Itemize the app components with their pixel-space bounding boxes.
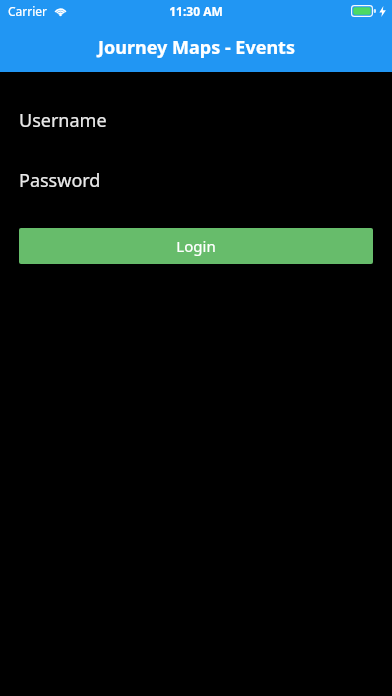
staticText: Username [19,108,107,133]
staticText: Password [19,168,101,193]
other: Battery charging [351,5,376,17]
other: Charging [379,6,386,17]
staticText: Journey Maps - Events [98,35,295,60]
button[interactable]: Username [0,105,392,135]
staticText: Login [176,236,216,256]
button[interactable]: Login [19,228,373,264]
staticText: 11:30 AM [169,3,223,19]
staticText: Carrier [8,3,48,19]
other: Wi-Fi signal [54,6,67,16]
button[interactable]: Password [0,165,392,195]
